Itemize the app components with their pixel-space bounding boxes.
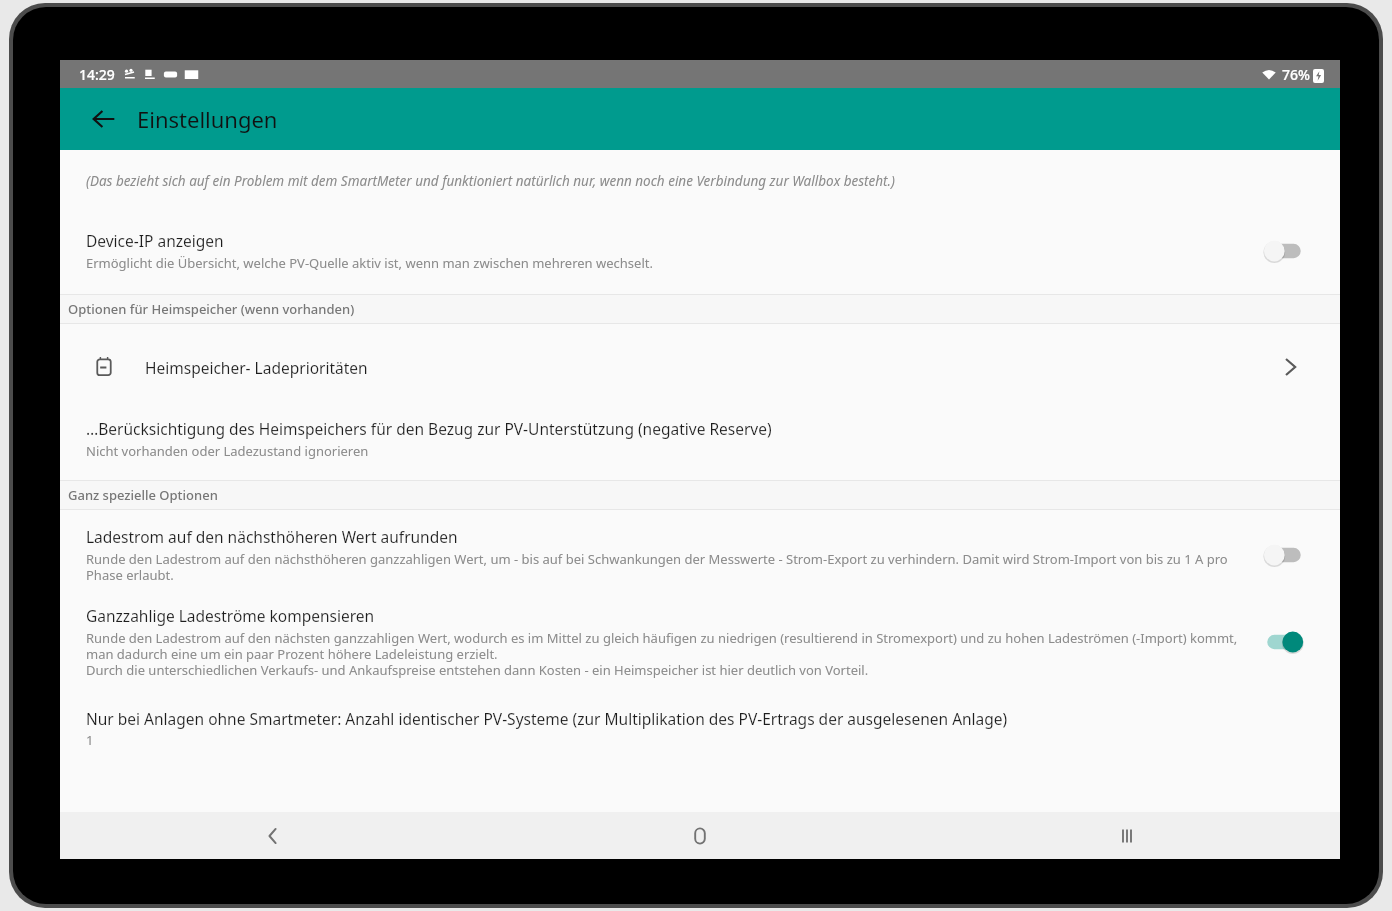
button[interactable]: Toggle off	[1262, 238, 1306, 264]
staticText: Einstellungen	[137, 104, 278, 134]
button[interactable]: Heimspeicher- Ladeprioritäten	[60, 342, 1340, 392]
button[interactable]: Nur bei Anlagen ohne Smartmeter: Anzahl …	[60, 708, 1340, 749]
staticText: Nicht vorhanden oder Ladezustand ignorie…	[86, 442, 369, 460]
staticText: Ermöglicht die Übersicht, welche PV-Quel…	[86, 254, 653, 272]
button[interactable]: Back	[60, 812, 486, 859]
button[interactable]: Recent apps	[913, 812, 1340, 859]
staticText: 14:29	[79, 65, 115, 84]
staticText: Device-IP anzeigen	[86, 230, 224, 251]
staticText: Nur bei Anlagen ohne Smartmeter: Anzahl …	[86, 708, 1008, 729]
button[interactable]: Toggle off	[1262, 542, 1306, 568]
staticText: Ladestrom auf den nächsthöheren Wert auf…	[86, 526, 458, 547]
button[interactable]: Back	[82, 97, 126, 141]
staticText: 76%	[1282, 65, 1310, 84]
button[interactable]: Ganzzahlige Ladeströme kompensieren	[60, 605, 1340, 678]
button[interactable]: Device-IP anzeigen	[60, 230, 1340, 272]
staticText: …Berücksichtigung des Heimspeichers für …	[86, 418, 772, 439]
staticText: Heimspeicher- Ladeprioritäten	[145, 357, 368, 378]
staticText: Ganzzahlige Ladeströme kompensieren	[86, 605, 375, 626]
button[interactable]: …Berücksichtigung des Heimspeichers für …	[60, 418, 1340, 460]
staticText: (Das bezieht sich auf ein Problem mit de…	[86, 172, 895, 190]
staticText: Ganz spezielle Optionen	[68, 486, 218, 504]
button[interactable]: Toggle on	[1262, 629, 1306, 655]
staticText: Optionen für Heimspeicher (wenn vorhande…	[68, 300, 355, 318]
button[interactable]: Ladestrom auf den nächsthöheren Wert auf…	[60, 526, 1340, 583]
button[interactable]: Home	[486, 812, 913, 859]
staticText: Runde den Ladestrom auf den nächsthöhere…	[86, 550, 1248, 583]
staticText: 1	[86, 731, 94, 749]
staticText: Runde den Ladestrom auf den nächsten gan…	[86, 629, 1248, 678]
